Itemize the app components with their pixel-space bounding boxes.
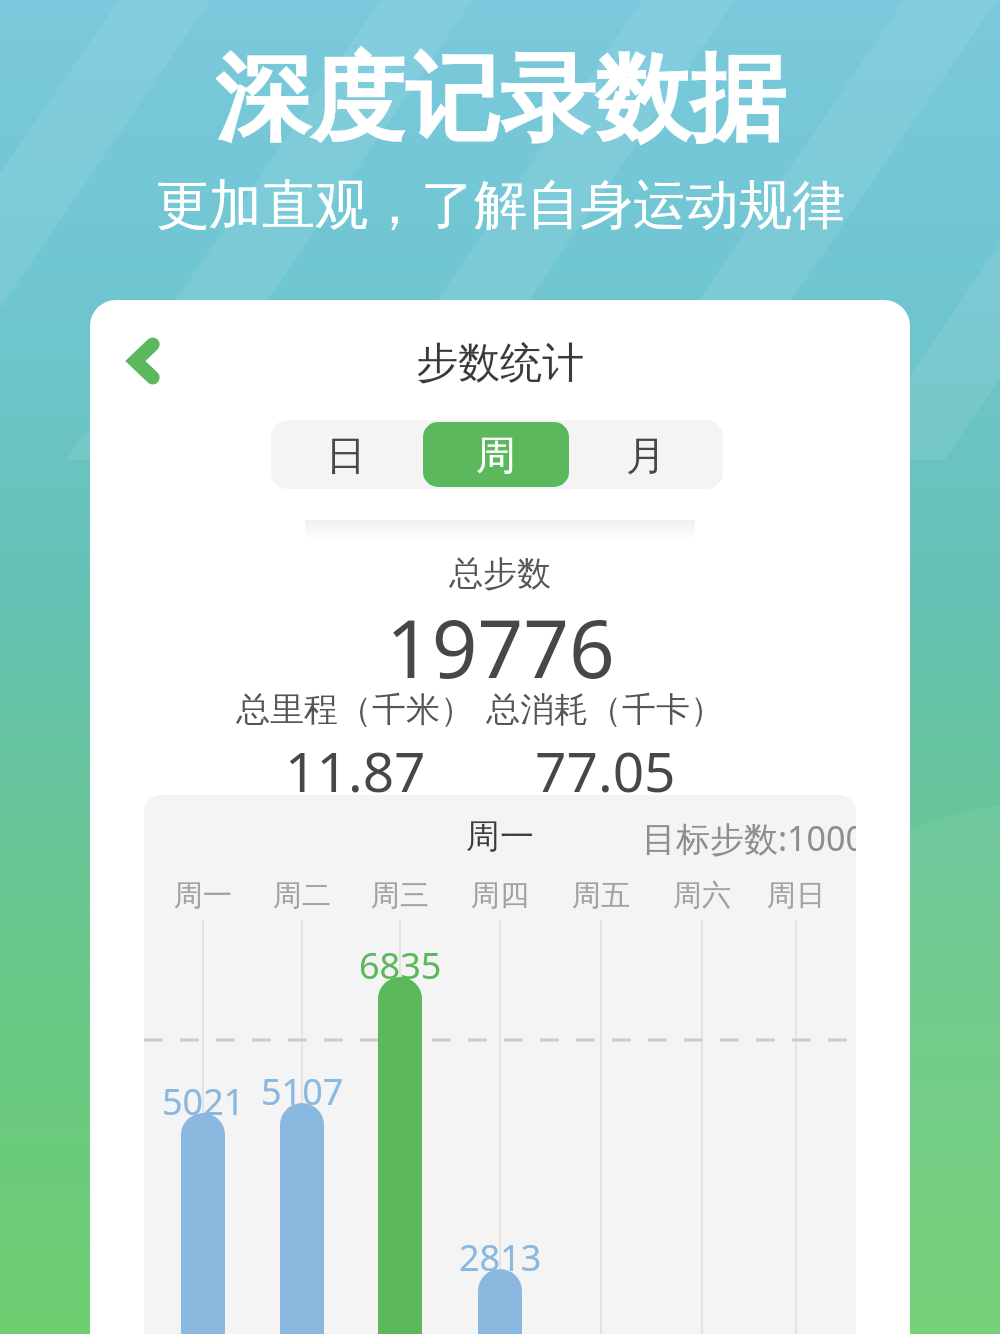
staticText: 11.87: [285, 733, 426, 808]
staticText: 周二: [273, 877, 331, 914]
staticText: 目标步数:10000: [642, 815, 856, 861]
staticText: 日: [326, 430, 366, 480]
staticText: 5107: [261, 1067, 344, 1116]
staticText: 周一: [174, 877, 232, 914]
staticText: 周三: [371, 877, 429, 914]
button[interactable]: 日: [273, 422, 419, 487]
staticText: 周日: [767, 877, 825, 914]
staticText: 总里程（千米）: [236, 688, 474, 731]
staticText: 19776: [386, 592, 615, 701]
staticText: 月: [626, 430, 666, 480]
staticText: 周六: [673, 877, 731, 914]
staticText: 周一: [466, 815, 534, 858]
staticText: 77.05: [535, 733, 676, 808]
button[interactable]: 周: [423, 422, 569, 487]
staticText: 6835: [359, 941, 442, 990]
staticText: 总步数: [449, 552, 551, 595]
staticText: 深度记录数据: [215, 40, 785, 160]
staticText: 5021: [162, 1077, 245, 1126]
staticText: 周四: [471, 877, 529, 914]
staticText: 周五: [572, 877, 630, 914]
staticText: 周: [476, 430, 516, 480]
staticText: 更加直观，了解自身运动规律: [156, 172, 845, 239]
staticText: 总消耗（千卡）: [486, 688, 724, 731]
staticText: 2813: [459, 1233, 542, 1282]
staticText: 步数统计: [416, 337, 584, 390]
button[interactable]: 月: [573, 422, 719, 487]
button[interactable]: 返回: [113, 330, 175, 392]
